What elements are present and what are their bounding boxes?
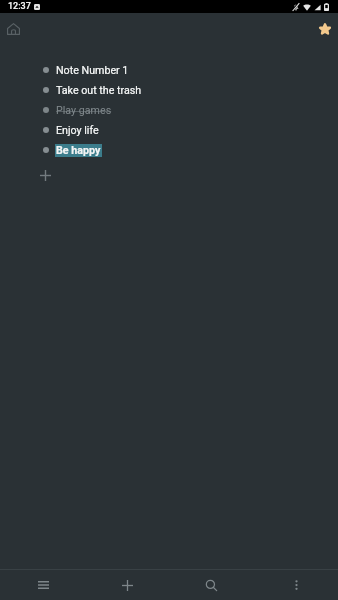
staticText: Play games (56, 104, 112, 117)
button[interactable]: Note Number 1 (0, 60, 338, 80)
staticText: Note Number 1 (56, 64, 129, 77)
button[interactable]: Add item (0, 160, 338, 191)
staticText: Enjoy life (56, 124, 99, 137)
button[interactable]: Be happy (0, 140, 338, 160)
button[interactable]: Take out the trash (0, 80, 338, 100)
button[interactable]: Favorite (312, 14, 338, 44)
button[interactable]: More options (253, 570, 338, 600)
staticText: 12:37 (8, 1, 31, 12)
button[interactable]: Home (0, 14, 26, 44)
staticText: Be happy (56, 144, 101, 157)
button[interactable]: Search (168, 570, 253, 600)
button[interactable]: Play games (0, 100, 338, 120)
button[interactable]: Enjoy life (0, 120, 338, 140)
staticText: Take out the trash (56, 84, 142, 97)
button[interactable]: Add note (84, 570, 168, 600)
button[interactable]: Menu (0, 570, 84, 600)
